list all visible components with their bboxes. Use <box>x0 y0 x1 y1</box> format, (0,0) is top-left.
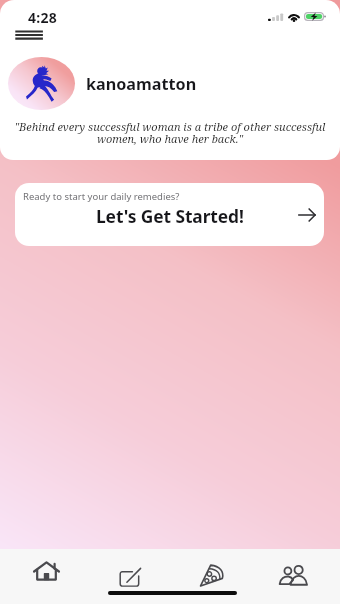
staticText: Let's Get Started! <box>96 204 244 228</box>
button[interactable]: Profile picture <box>8 57 75 110</box>
button[interactable]: Community <box>261 554 327 600</box>
button[interactable]: Ready to start your daily remedies? <box>15 183 324 246</box>
staticText: 4:28 <box>28 8 58 27</box>
staticText: "Behind every successful woman is a trib… <box>4 119 336 146</box>
button[interactable]: Home <box>13 548 79 594</box>
staticText: kanoamatton <box>86 73 197 95</box>
button[interactable]: Compose post <box>98 554 164 600</box>
button[interactable]: Go <box>298 206 316 224</box>
staticText: Ready to start your daily remedies? <box>23 190 180 203</box>
button[interactable]: Open menu <box>13 26 43 44</box>
button[interactable]: Recipes <box>179 552 245 598</box>
